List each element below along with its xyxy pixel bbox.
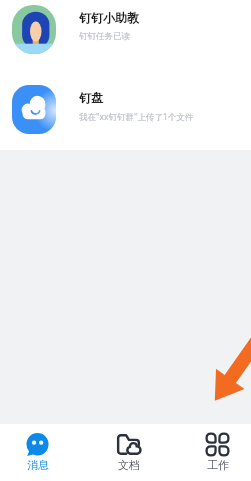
- other: 文档: [117, 433, 140, 456]
- staticText: 文档: [118, 458, 140, 472]
- other: 工作: [206, 433, 229, 456]
- staticText: 钉钉小助教: [79, 10, 139, 25]
- staticText: 消息: [27, 458, 49, 472]
- button[interactable]: 钉钉小助教: [0, 0, 251, 69]
- staticText: 我在"xx钉钉群"上传了1个文件: [79, 111, 194, 123]
- staticText: 钉盘: [79, 90, 103, 105]
- staticText: 钉钉任务已读: [79, 31, 130, 42]
- button[interactable]: 文档: [83, 424, 173, 481]
- button[interactable]: 消息: [0, 424, 83, 481]
- button[interactable]: 钉盘: [0, 69, 251, 149]
- staticText: 工作: [207, 458, 229, 472]
- button[interactable]: 工作: [173, 424, 251, 481]
- other: 消息: [26, 433, 49, 456]
